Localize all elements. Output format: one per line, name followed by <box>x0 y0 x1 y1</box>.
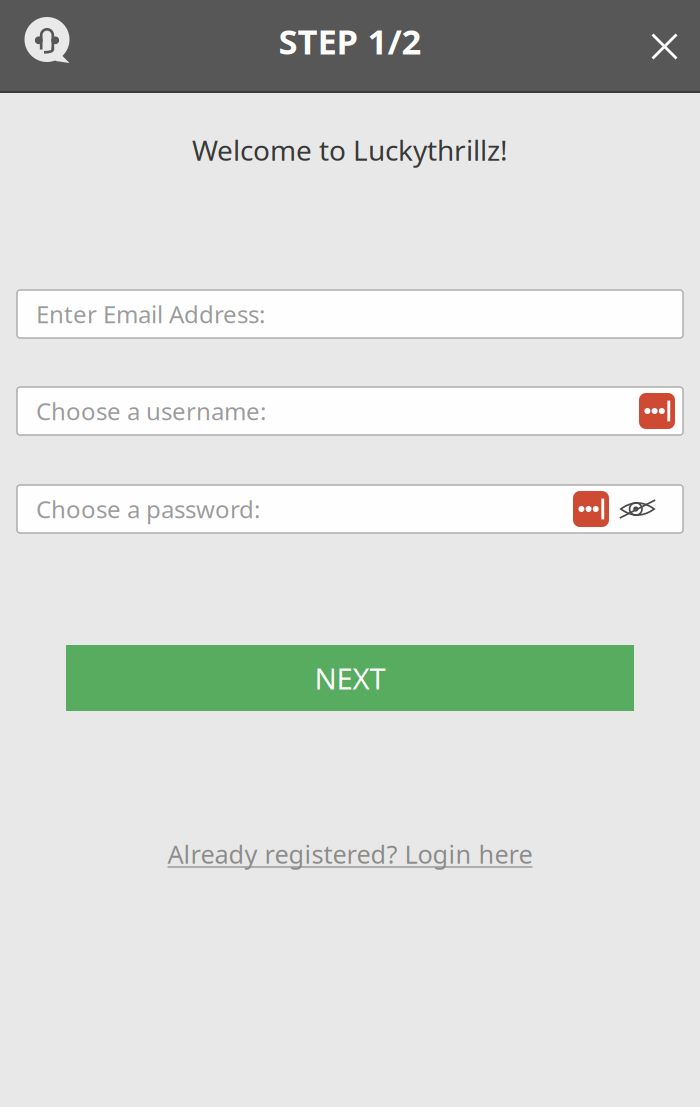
staticText: Enter Email Address: <box>36 298 265 330</box>
staticText: NEXT <box>314 658 385 697</box>
staticText: Choose a password: <box>36 493 260 525</box>
button[interactable]: NEXT <box>66 645 634 711</box>
staticText: Already registered? Login here <box>167 837 532 871</box>
staticText: STEP 1/2 <box>278 18 421 64</box>
button[interactable]: Customer support <box>0 0 90 93</box>
staticText: Welcome to Luckythrillz! <box>192 131 508 169</box>
button[interactable]: Choose a username: <box>17 387 683 435</box>
button[interactable]: Enter Email Address: <box>17 290 683 338</box>
button[interactable]: Close <box>629 0 700 93</box>
button[interactable]: Already registered? Login here <box>167 839 532 869</box>
staticText: Choose a username: <box>36 395 266 427</box>
button[interactable]: Choose a password: <box>17 485 683 533</box>
